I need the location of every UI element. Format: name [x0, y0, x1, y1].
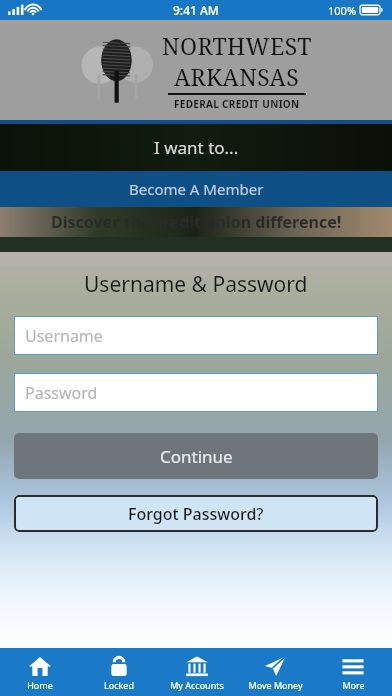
- button[interactable]: Locked: [79, 648, 158, 696]
- staticText: 100%: [328, 3, 357, 18]
- staticText: Move Money: [248, 679, 303, 691]
- staticText: Username: [25, 325, 103, 347]
- button[interactable]: Continue: [14, 433, 378, 479]
- staticText: I want to...: [154, 136, 239, 159]
- staticText: Home: [27, 679, 53, 691]
- staticText: ARKANSAS: [174, 61, 300, 92]
- button[interactable]: Username: [14, 316, 378, 355]
- button[interactable]: Password: [14, 373, 378, 412]
- staticText: Forgot Password?: [128, 503, 264, 525]
- staticText: More: [342, 679, 365, 691]
- staticText: 9:41 AM: [173, 2, 219, 18]
- button[interactable]: Become A Member: [0, 171, 392, 207]
- staticText: My Accounts: [170, 679, 224, 691]
- staticText: Continue: [160, 445, 233, 468]
- staticText: Locked: [104, 679, 134, 691]
- button[interactable]: Home: [0, 648, 79, 696]
- button[interactable]: Move Money: [236, 648, 314, 696]
- staticText: Discover the credit union difference!: [51, 211, 342, 233]
- staticText: Password: [25, 382, 98, 404]
- staticText: FEDERAL CREDIT UNION: [174, 97, 300, 111]
- staticText: Become A Member: [129, 179, 264, 199]
- button[interactable]: My Accounts: [158, 648, 236, 696]
- button[interactable]: More: [314, 648, 392, 696]
- button[interactable]: Forgot Password?: [14, 495, 378, 532]
- staticText: Username & Password: [84, 270, 308, 299]
- staticText: NORTHWEST: [162, 30, 312, 61]
